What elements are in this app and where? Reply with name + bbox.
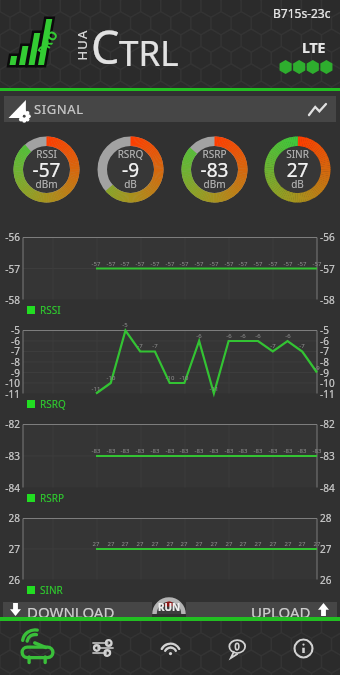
staticText: -83 [131,447,149,455]
button[interactable]: WiFi [140,621,200,675]
button[interactable]: Graph [302,96,332,122]
staticText: -83 [205,447,223,455]
staticText: 26 [320,573,340,587]
button[interactable]: RSSI [13,136,80,203]
staticText: -57 [279,260,297,268]
staticText: -11 [0,387,20,401]
staticText: RSRQ [97,147,164,161]
staticText: -83 [116,447,134,455]
staticText: -10 [0,376,20,390]
staticText: -57 [146,260,164,268]
staticText: -57 [161,260,179,268]
staticText: -5 [116,321,134,329]
staticText: 27 [175,540,193,548]
staticText: -57 [249,260,267,268]
staticText: -57 [190,260,208,268]
button[interactable]: Settings [73,621,133,675]
staticText: HUA [72,29,90,60]
staticText: -57 [131,260,149,268]
staticText: dBm [13,177,80,191]
button[interactable]: RUN [152,599,186,614]
staticText: -5 [0,323,20,337]
staticText: RUN [158,600,181,614]
staticText: -57 [175,260,193,268]
staticText: SINR [40,583,63,597]
staticText: -83 [0,449,20,463]
staticText: 27 [205,540,223,548]
staticText: dBm [181,177,248,191]
staticText: -83 [279,447,297,455]
staticText: 27 [87,540,105,548]
staticText: -6 [320,334,340,348]
staticText: -6 [220,332,238,340]
staticText: -7 [131,342,149,350]
staticText: -57 [13,157,80,183]
staticText: 27 [279,540,297,548]
staticText: -11 [320,387,340,401]
staticText: 27 [249,540,267,548]
button[interactable]: SINR [264,136,331,203]
staticText: -82 [0,417,20,431]
staticText: -9 [0,366,20,380]
button[interactable]: DOWNLOAD [3,602,152,617]
staticText: 27 [102,540,120,548]
staticText: UPLOAD [251,602,311,617]
staticText: 27 [308,540,326,548]
staticText: RSSI [40,303,61,317]
staticText: -57 [308,260,326,268]
button[interactable]: Info [273,621,333,675]
staticText: SIGNAL [34,100,84,118]
staticText: -11 [205,385,223,393]
staticText: -9 [320,366,340,380]
button[interactable]: Messages [207,621,267,675]
staticText: 27 [264,157,331,183]
staticText: -58 [320,293,340,307]
staticText: TRL [119,29,179,77]
staticText: -6 [249,332,267,340]
staticText: 27 [320,542,340,556]
staticText: -10 [102,374,120,382]
staticText: -6 [0,334,20,348]
staticText: -83 [190,447,208,455]
staticText: 27 [293,540,311,548]
staticText: dB [264,177,331,191]
staticText: RSRP [181,147,248,161]
button[interactable]: RSRP [181,136,248,203]
staticText: LTE [302,38,326,57]
staticText: -57 [116,260,134,268]
staticText: DOWNLOAD [27,602,115,617]
staticText: -57 [0,262,20,276]
staticText: 27 [264,540,282,548]
staticText: -83 [161,447,179,455]
staticText: -7 [293,342,311,350]
button[interactable]: SIGNAL [4,96,336,122]
button[interactable]: UPLOAD [186,602,337,617]
staticText: RSSI [13,147,80,161]
staticText: -7 [0,344,20,358]
button[interactable]: RSRQ [97,136,164,203]
staticText: -10 [161,374,179,382]
staticText: -57 [293,260,311,268]
staticText: -83 [234,447,252,455]
staticText: C [91,16,120,77]
staticText: -11 [87,385,105,393]
staticText: -10 [320,376,340,390]
staticText: -6 [190,332,208,340]
staticText: -57 [205,260,223,268]
staticText: 27 [116,540,134,548]
staticText: -84 [0,481,20,495]
staticText: 27 [161,540,179,548]
staticText: -57 [220,260,238,268]
staticText: 27 [220,540,238,548]
staticText: -6 [234,332,252,340]
staticText: -56 [0,230,20,244]
staticText: RSRQ [40,397,66,411]
staticText: SINR [264,147,331,161]
staticText: -83 [87,447,105,455]
button[interactable]: Router [7,621,67,675]
staticText: -6 [279,332,297,340]
staticText: B715s-23c [273,5,331,21]
staticText: -83 [293,447,311,455]
staticText: -9 [308,364,326,372]
staticText: -57 [87,260,105,268]
